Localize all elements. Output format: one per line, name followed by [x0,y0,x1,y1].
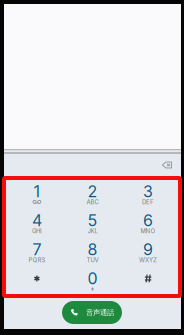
staticText: 8 [87,240,97,259]
staticText: 2 [87,182,97,201]
button[interactable]: 5 [65,206,120,235]
staticText: TUV [86,256,98,264]
button[interactable]: 8 [65,235,120,264]
button[interactable]: 3 [120,177,176,206]
staticText: 3 [143,182,153,201]
staticText: PQRS [28,256,45,264]
button[interactable]: 9 [120,235,176,264]
staticText: GHI [32,227,42,235]
staticText: 1 [33,182,40,201]
button[interactable]: 2 [65,177,120,206]
button[interactable]: Pound [120,264,176,293]
staticText: MNO [141,227,156,235]
button[interactable]: 0 [65,264,120,293]
button[interactable]: 4 [9,206,65,235]
staticText: 9 [143,240,153,259]
staticText: ABC [86,198,98,206]
staticText: 5 [87,211,97,230]
staticText: 4 [32,211,42,230]
button[interactable]: 6 [120,206,176,235]
staticText: 音声通話 [86,308,114,317]
button[interactable]: 音声通話 [62,301,122,324]
staticText: WXYZ [139,256,157,264]
staticText: 7 [32,240,41,259]
staticText: 0 [87,269,97,288]
button[interactable]: Star [9,264,65,293]
staticText: 6 [143,211,153,230]
staticText: DEF [142,198,154,206]
staticText: JKL [87,227,97,235]
button[interactable]: 7 [9,235,65,264]
button[interactable]: Delete [155,155,179,175]
button[interactable]: 1 [9,177,65,206]
